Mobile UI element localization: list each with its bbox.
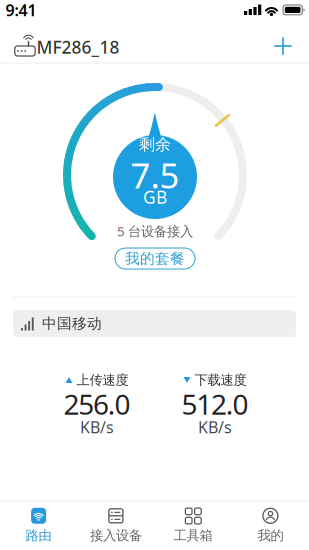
staticText: 工具箱 — [174, 527, 213, 544]
staticText: KB/s — [198, 416, 232, 438]
button[interactable]: 工具箱 — [155, 501, 232, 549]
staticText: 512.0 — [181, 385, 249, 423]
button[interactable]: 中国移动 — [13, 310, 296, 337]
button[interactable]: 接入设备 — [77, 501, 154, 549]
button[interactable]: Add device — [263, 26, 303, 66]
staticText: 我的 — [257, 527, 283, 544]
staticText: 上传速度 — [76, 372, 128, 388]
button[interactable]: 我的 — [232, 501, 309, 549]
staticText: 7.5 — [130, 152, 179, 198]
staticText: 接入设备 — [90, 527, 142, 544]
button[interactable]: 路由 — [0, 501, 77, 549]
button[interactable]: 我的套餐 — [115, 248, 195, 269]
staticText: GB — [143, 185, 167, 208]
staticText: KB/s — [80, 416, 114, 438]
staticText: 剩余 — [139, 135, 171, 154]
staticText: 5 台设备接入 — [117, 222, 193, 240]
staticText: MF286_18 — [36, 35, 119, 58]
staticText: 下载速度 — [194, 372, 246, 388]
staticText: 我的套餐 — [125, 249, 185, 267]
staticText: 路由 — [26, 527, 52, 544]
staticText: 256.0 — [63, 385, 131, 423]
staticText: 中国移动 — [42, 314, 102, 332]
staticText: 9:41 — [5, 0, 36, 21]
